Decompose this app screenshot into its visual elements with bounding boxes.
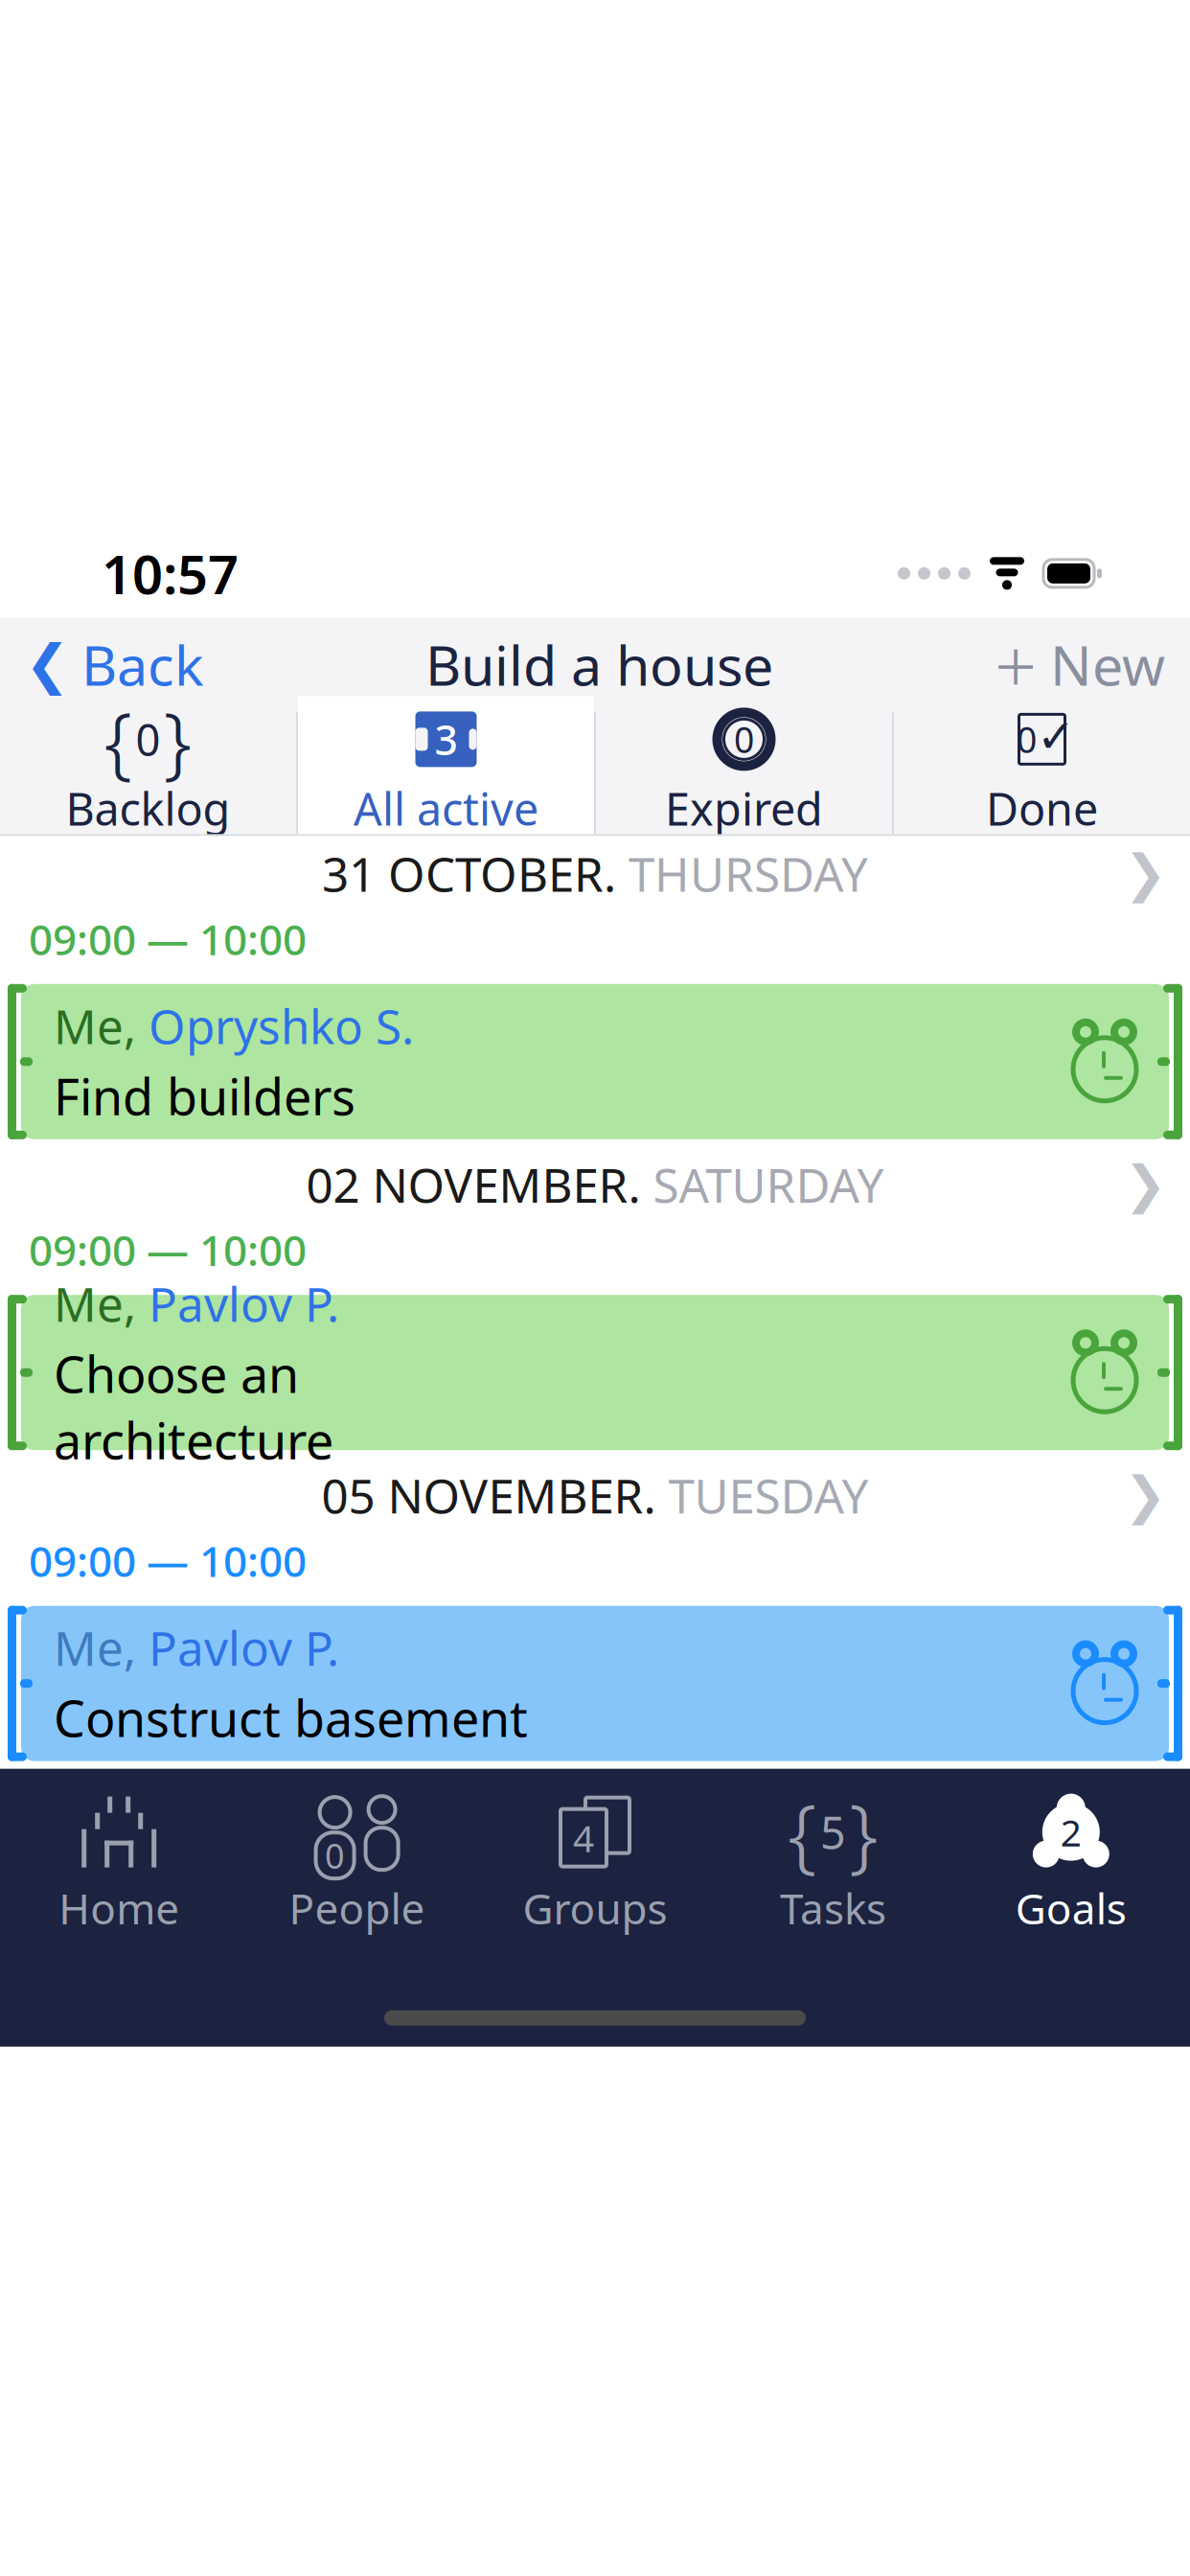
button[interactable]: {: [714, 1796, 952, 1936]
staticText: THURSDAY: [616, 842, 868, 905]
staticText: Tasks: [780, 1880, 886, 1936]
staticText: Pavlov P.: [136, 1272, 339, 1335]
staticText: People: [289, 1880, 425, 1936]
button[interactable]: {: [0, 696, 296, 851]
staticText: Find builders: [54, 1063, 355, 1129]
staticText: Me,: [54, 1616, 136, 1679]
staticText: 5: [820, 1802, 846, 1862]
staticText: {: [104, 687, 133, 792]
button[interactable]: 2: [952, 1796, 1190, 1936]
button[interactable]: ❮: [0, 615, 204, 714]
staticText: Done: [986, 779, 1098, 838]
staticText: 0: [734, 715, 754, 763]
staticText: 3: [435, 712, 458, 766]
button[interactable]: 05 NOVEMBER.: [0, 1458, 1190, 1533]
button[interactable]: Me,: [0, 1598, 1190, 1769]
button[interactable]: Me,: [0, 1287, 1190, 1458]
staticText: Backlog: [66, 779, 230, 838]
staticText: 02 NOVEMBER.: [306, 1153, 641, 1216]
staticText: All active: [354, 779, 538, 838]
button[interactable]: 31 OCTOBER.: [0, 836, 1190, 911]
staticText: Expired: [665, 779, 823, 838]
staticText: 2: [1060, 1807, 1082, 1857]
staticText: SATURDAY: [641, 1153, 884, 1216]
staticText: 0: [1017, 715, 1037, 763]
staticText: 05 NOVEMBER.: [321, 1464, 656, 1527]
staticText: ❮: [25, 634, 70, 695]
staticText: 09:00 — 10:00: [29, 1533, 307, 1589]
button[interactable]: 02 NOVEMBER.: [0, 1147, 1190, 1222]
staticText: Pavlov P.: [136, 1616, 339, 1679]
button[interactable]: 0: [894, 696, 1190, 851]
staticText: {: [787, 1778, 817, 1886]
button[interactable]: 4: [476, 1796, 714, 1936]
staticText: Goals: [1015, 1880, 1127, 1936]
staticText: New: [1050, 628, 1165, 701]
button[interactable]: +: [995, 602, 1190, 727]
staticText: Groups: [523, 1880, 667, 1936]
staticText: ❯: [1124, 844, 1167, 902]
staticText: Opryshko S.: [136, 994, 414, 1057]
button[interactable]: Me,: [0, 976, 1190, 1147]
staticText: 4: [573, 1813, 594, 1862]
button[interactable]: Home: [0, 1796, 238, 1936]
staticText: 0: [136, 710, 160, 768]
button[interactable]: 0: [238, 1796, 476, 1936]
staticText: Build a house: [425, 628, 773, 701]
button[interactable]: 3: [298, 696, 594, 851]
staticText: Choose an architecture: [54, 1341, 333, 1473]
staticText: TUESDAY: [656, 1464, 869, 1527]
staticText: Home: [59, 1880, 179, 1936]
staticText: 10:57: [102, 538, 239, 609]
staticText: 0: [325, 1833, 345, 1878]
staticText: +: [995, 615, 1037, 714]
staticText: Back: [81, 628, 204, 701]
staticText: 09:00 — 10:00: [29, 1222, 307, 1278]
staticText: }: [849, 1778, 879, 1886]
staticText: 09:00 — 10:00: [29, 911, 307, 967]
staticText: ❯: [1124, 1155, 1167, 1213]
staticText: 31 OCTOBER.: [322, 842, 616, 905]
staticText: Construct basement: [54, 1685, 528, 1751]
staticText: ✓: [1037, 710, 1075, 762]
staticText: ❯: [1124, 1466, 1167, 1524]
staticText: Me,: [54, 994, 136, 1057]
staticText: }: [163, 687, 192, 792]
button[interactable]: 0: [596, 696, 892, 851]
staticText: Me,: [54, 1272, 136, 1335]
